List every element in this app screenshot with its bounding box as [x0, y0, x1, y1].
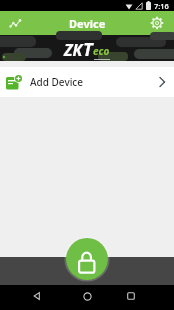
button[interactable]: [76, 285, 98, 307]
button[interactable]: [149, 15, 165, 31]
staticText: Device: [69, 16, 106, 31]
button[interactable]: Add Device: [0, 67, 174, 97]
staticText: eco: [93, 44, 110, 58]
button[interactable]: [6, 14, 24, 32]
staticText: ZK: [64, 39, 83, 61]
staticText: 7:16: [154, 1, 169, 11]
staticText: T: [83, 37, 93, 62]
button[interactable]: [26, 285, 48, 307]
button[interactable]: [66, 238, 108, 280]
button[interactable]: [120, 285, 142, 307]
staticText: Add Device: [30, 75, 84, 89]
